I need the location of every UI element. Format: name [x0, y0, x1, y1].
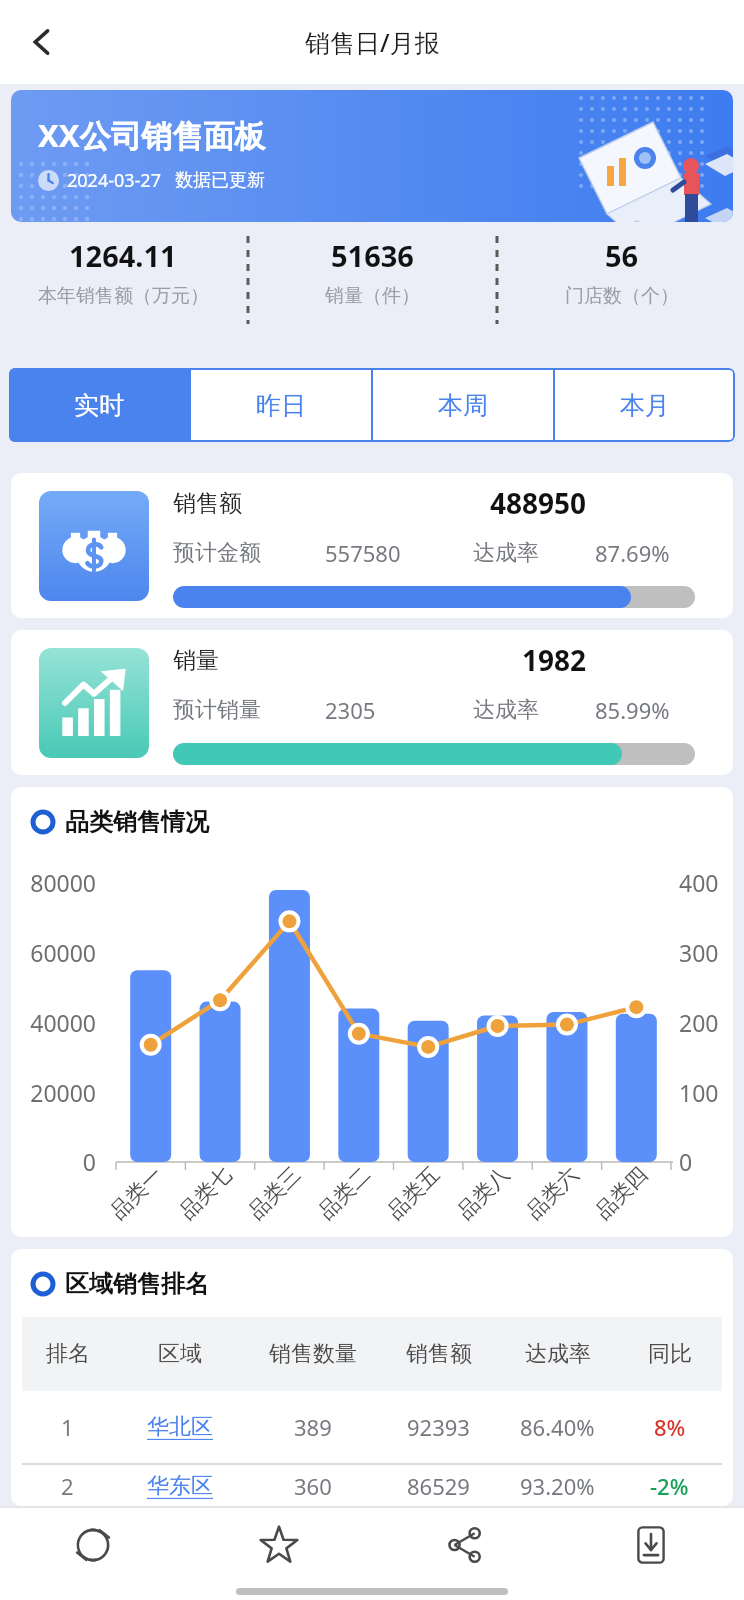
button[interactable]: XX公司销售面板 — [11, 90, 733, 222]
staticText: 100 — [679, 1077, 719, 1108]
staticText: 40000 — [11, 1007, 96, 1038]
button[interactable]: Refresh — [0, 1508, 186, 1582]
staticText: 93.20% — [520, 1471, 595, 1501]
staticText: 数据已更新 — [175, 169, 265, 192]
button[interactable]: 销售额 — [11, 473, 733, 618]
staticText: 销售日/月报 — [305, 25, 440, 59]
staticText: 0 — [679, 1146, 693, 1177]
staticText: 200 — [679, 1007, 719, 1038]
staticText: 8% — [654, 1412, 686, 1442]
staticText: 86529 — [407, 1471, 470, 1501]
staticText: 同比 — [648, 1340, 692, 1368]
staticText: 2024-03-27 — [67, 168, 161, 193]
staticText: 1264.11 — [69, 236, 177, 275]
staticText: 门店数（个） — [565, 284, 679, 308]
staticText: 华北区 — [147, 1413, 213, 1441]
staticText: 实时 — [74, 390, 124, 421]
staticText: 300 — [679, 937, 719, 968]
staticText: 87.69% — [595, 538, 670, 568]
staticText: 400 — [679, 867, 719, 898]
staticText: 1 — [61, 1412, 74, 1442]
button[interactable]: Favorite — [186, 1508, 372, 1582]
staticText: 92393 — [407, 1412, 470, 1442]
button[interactable]: Share — [372, 1508, 558, 1582]
staticText: 80000 — [11, 867, 96, 898]
staticText: 本月 — [620, 390, 670, 421]
button[interactable]: 实时 — [9, 368, 189, 442]
staticText: 销量（件） — [325, 284, 420, 308]
staticText: XX公司销售面板 — [38, 114, 266, 156]
staticText: 预计销量 — [173, 696, 325, 724]
staticText: 488950 — [490, 484, 587, 522]
staticText: 51636 — [331, 236, 414, 275]
staticText: 2 — [61, 1471, 74, 1501]
staticText: 品类二 — [313, 1161, 376, 1224]
button[interactable]: 2 — [22, 1465, 722, 1506]
staticText: 品类八 — [452, 1161, 515, 1224]
staticText: 销售数量 — [269, 1340, 357, 1368]
button[interactable]: 56 — [499, 236, 744, 308]
staticText: 56 — [605, 236, 639, 275]
button[interactable]: 1 — [22, 1391, 722, 1463]
button[interactable]: Download — [558, 1508, 744, 1582]
staticText: 销量 — [173, 646, 219, 675]
staticText: 区域销售排名 — [65, 1269, 209, 1299]
button[interactable]: Back — [14, 14, 70, 70]
staticText: 本周 — [438, 390, 488, 421]
staticText: 昨日 — [256, 390, 306, 421]
staticText: 品类四 — [590, 1161, 653, 1224]
button[interactable]: 51636 — [250, 236, 495, 308]
staticText: 区域 — [158, 1340, 202, 1368]
staticText: 预计金额 — [173, 539, 325, 567]
staticText: 品类销售情况 — [65, 807, 209, 837]
staticText: 华东区 — [147, 1472, 213, 1500]
button[interactable]: 1264.11 — [0, 236, 246, 308]
staticText: 品类六 — [521, 1161, 584, 1224]
staticText: 品类三 — [243, 1161, 306, 1224]
staticText: 20000 — [11, 1077, 96, 1108]
staticText: 品类五 — [382, 1161, 445, 1224]
staticText: 达成率 — [473, 539, 595, 567]
staticText: 85.99% — [595, 695, 670, 725]
staticText: -2% — [650, 1471, 689, 1501]
staticText: 1982 — [522, 641, 587, 679]
staticText: 557580 — [325, 538, 473, 568]
staticText: 品类一 — [105, 1161, 168, 1224]
staticText: 389 — [294, 1412, 332, 1442]
staticText: 2305 — [325, 695, 473, 725]
button[interactable]: 销量 — [11, 630, 733, 775]
staticText: 品类七 — [174, 1161, 237, 1224]
staticText: 达成率 — [525, 1340, 591, 1368]
staticText: 本年销售额（万元） — [38, 284, 209, 308]
button[interactable]: 昨日 — [191, 368, 371, 442]
staticText: 排名 — [46, 1340, 90, 1368]
button[interactable]: 本周 — [373, 368, 553, 442]
staticText: 达成率 — [473, 696, 595, 724]
staticText: 60000 — [11, 937, 96, 968]
staticText: 销售额 — [406, 1340, 472, 1368]
staticText: 销售额 — [173, 489, 242, 518]
staticText: 0 — [11, 1146, 96, 1177]
staticText: 360 — [294, 1471, 332, 1501]
staticText: 86.40% — [520, 1412, 595, 1442]
button[interactable]: 本月 — [555, 368, 735, 442]
